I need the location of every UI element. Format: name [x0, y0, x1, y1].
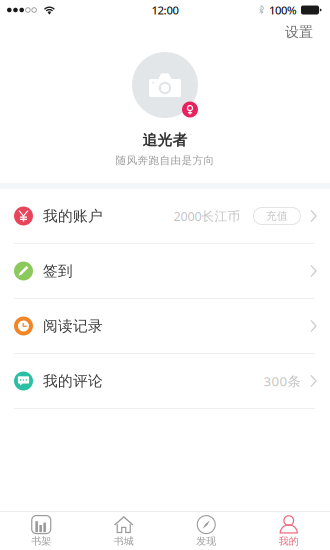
button[interactable]: 签到 — [0, 244, 330, 299]
staticText: 追光者 — [142, 131, 187, 149]
button[interactable]: 我的 — [247, 512, 330, 550]
staticText: 签到 — [43, 262, 73, 280]
staticText: 书城 — [114, 535, 134, 547]
button[interactable]: 我的评论 — [0, 354, 330, 409]
button[interactable]: 发现 — [165, 512, 247, 550]
staticText: 随风奔跑自由是方向 — [115, 154, 214, 167]
button[interactable]: 书城 — [82, 512, 165, 550]
staticText: 我的账户 — [43, 207, 103, 225]
staticText: 充值 — [266, 209, 288, 223]
button[interactable]: 充值 — [253, 207, 300, 224]
staticText: 100% — [269, 2, 297, 18]
staticText: 300条 — [263, 372, 300, 390]
staticText: 我的 — [279, 535, 299, 547]
staticText: 我的评论 — [43, 372, 103, 390]
staticText: 发现 — [196, 535, 216, 547]
staticText: 阅读记录 — [43, 317, 103, 335]
button[interactable]: 书架 — [0, 512, 82, 550]
staticText: 12:00 — [151, 2, 178, 18]
staticText: 书架 — [31, 535, 51, 547]
staticText: 设置 — [285, 23, 313, 41]
button[interactable]: 阅读记录 — [0, 299, 330, 354]
button[interactable]: 设置 — [285, 20, 330, 44]
staticText: 2000长江币 — [173, 207, 240, 225]
button[interactable]: 我的账户 — [0, 189, 330, 244]
button[interactable]: 更换头像 — [132, 52, 198, 118]
